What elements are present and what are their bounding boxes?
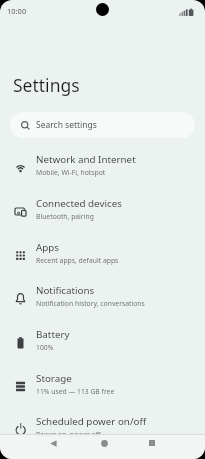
staticText: Settings: [13, 73, 80, 97]
staticText: Power on, power off: [36, 430, 101, 439]
button[interactable]: Connected devices: [0, 187, 205, 231]
staticText: Bluetooth, pairing: [36, 212, 94, 221]
button[interactable]: Scheduled power on/off: [0, 405, 205, 449]
staticText: Notification history, conversations: [36, 299, 145, 308]
button[interactable]: [98, 437, 110, 449]
staticText: Recent apps, default apps: [36, 256, 119, 265]
button[interactable]: Search settings: [10, 112, 195, 138]
staticText: Notifications: [36, 284, 95, 297]
button[interactable]: Network and Internet: [0, 143, 205, 187]
button[interactable]: Apps: [0, 231, 205, 275]
staticText: Storage: [36, 372, 72, 385]
button[interactable]: Battery: [0, 318, 205, 362]
button[interactable]: [146, 437, 158, 449]
staticText: 11% used — 113 GB free: [36, 387, 115, 396]
staticText: Search settings: [36, 119, 97, 131]
staticText: Apps: [36, 241, 60, 254]
button[interactable]: Storage: [0, 362, 205, 406]
button[interactable]: [47, 437, 59, 449]
staticText: Mobile, Wi-Fi, hotspot: [36, 168, 106, 177]
staticText: 100%: [36, 343, 54, 352]
staticText: Scheduled power on/off: [36, 415, 147, 428]
staticText: Network and Internet: [36, 153, 136, 166]
staticText: 10:00: [7, 6, 27, 16]
button[interactable]: Notifications: [0, 274, 205, 318]
staticText: Battery: [36, 328, 70, 341]
staticText: Connected devices: [36, 197, 122, 210]
